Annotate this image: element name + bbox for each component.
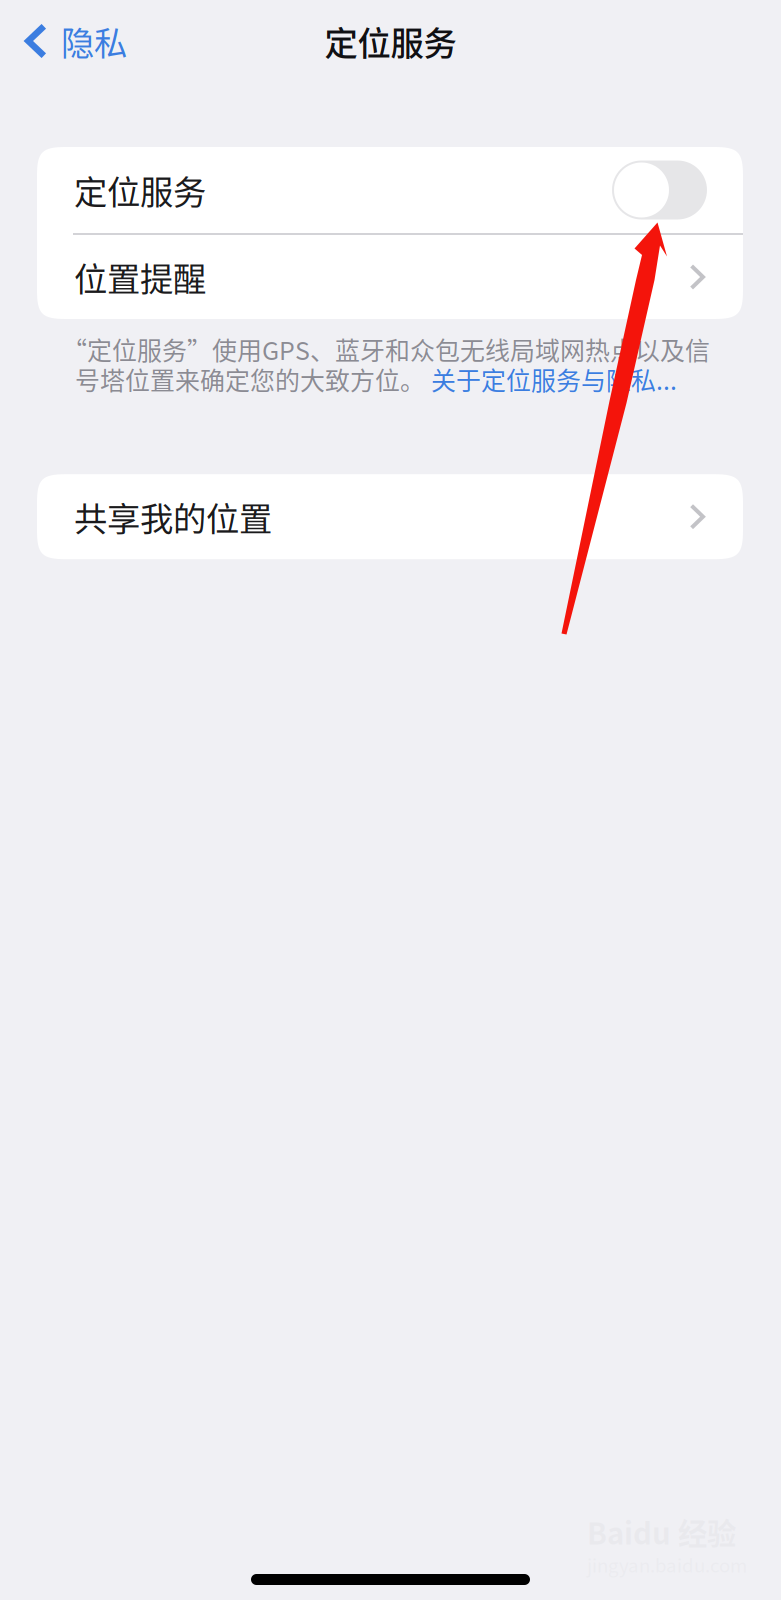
staticText: 隐私 xyxy=(61,17,127,65)
staticText: 位置提醒 xyxy=(74,253,206,301)
staticText: 定位服务 xyxy=(74,166,206,214)
button[interactable]: 共享我的位置 xyxy=(37,474,743,559)
button[interactable]: 关于定位服务与隐私... xyxy=(431,361,677,397)
staticText: “定位服务”使用GPS、蓝牙和众包无线局域网热点以及信 xyxy=(62,331,710,367)
button[interactable]: 隐私 xyxy=(0,0,145,82)
staticText: 共享我的位置 xyxy=(74,493,272,541)
button[interactable]: 定位服务 xyxy=(37,147,743,233)
staticText: 关于定位服务与隐私... xyxy=(431,361,677,397)
staticText: 定位服务 xyxy=(324,17,456,65)
staticText: 号塔位置来确定您的大致方位。 xyxy=(75,361,431,397)
button[interactable]: 位置提醒 xyxy=(37,235,743,319)
